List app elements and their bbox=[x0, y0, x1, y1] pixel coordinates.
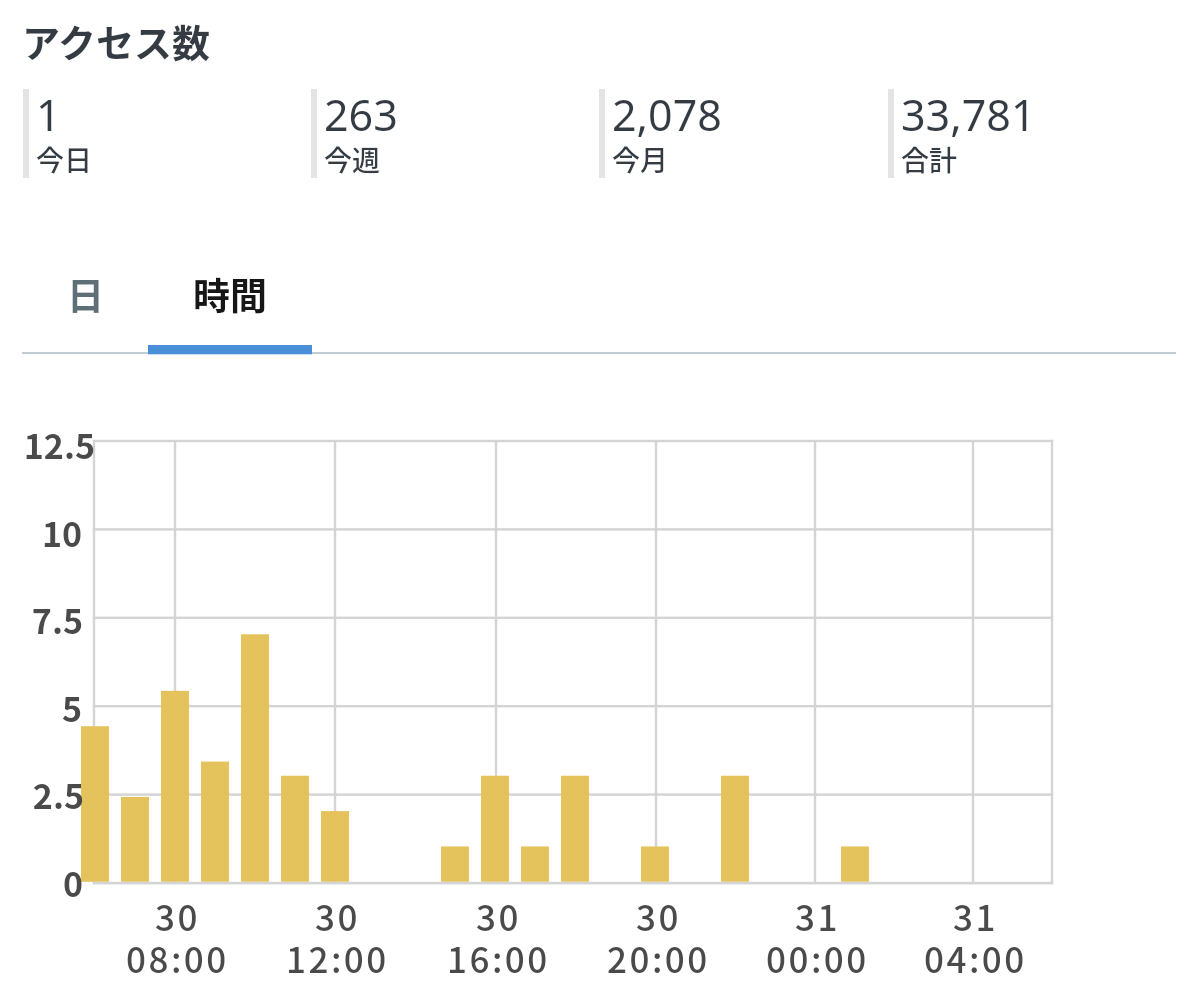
staticText: 31 bbox=[795, 890, 840, 941]
staticText: 30 bbox=[315, 890, 360, 941]
staticText: 1 bbox=[36, 85, 61, 144]
staticText: 合計 bbox=[901, 139, 958, 180]
staticText: 2,078 bbox=[612, 85, 722, 144]
staticText: 5 bbox=[61, 683, 82, 732]
staticText: 今週 bbox=[324, 139, 381, 180]
staticText: 20:00 bbox=[607, 932, 710, 983]
staticText: 00:00 bbox=[766, 932, 869, 983]
staticText: 12:00 bbox=[286, 932, 389, 983]
staticText: 日 bbox=[67, 267, 104, 321]
staticText: 08:00 bbox=[126, 932, 229, 983]
staticText: 今日 bbox=[36, 139, 93, 180]
button[interactable]: 時間 bbox=[148, 255, 312, 353]
button[interactable]: 33,781 bbox=[888, 89, 1177, 178]
button[interactable]: 1 bbox=[23, 89, 311, 178]
other: 時間ごとのアクセス数の棒グラフ bbox=[0, 0, 1200, 991]
staticText: 0 bbox=[62, 858, 83, 907]
button[interactable]: 日 bbox=[22, 255, 148, 353]
staticText: 時間 bbox=[193, 267, 267, 321]
staticText: 2.5 bbox=[32, 770, 84, 819]
staticText: 263 bbox=[324, 85, 398, 144]
staticText: 30 bbox=[155, 890, 200, 941]
staticText: 10 bbox=[41, 508, 82, 557]
staticText: 7.5 bbox=[31, 595, 83, 644]
button[interactable]: 263 bbox=[311, 89, 599, 178]
staticText: 33,781 bbox=[901, 85, 1036, 144]
staticText: 今月 bbox=[612, 139, 669, 180]
staticText: 04:00 bbox=[924, 932, 1027, 983]
button[interactable]: 2,078 bbox=[599, 89, 888, 178]
staticText: 16:00 bbox=[447, 932, 550, 983]
staticText: アクセス数 bbox=[22, 13, 211, 68]
staticText: 30 bbox=[476, 890, 521, 941]
staticText: 12.5 bbox=[23, 420, 95, 469]
staticText: 30 bbox=[636, 890, 681, 941]
staticText: 31 bbox=[953, 890, 998, 941]
